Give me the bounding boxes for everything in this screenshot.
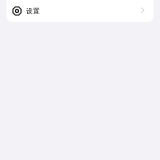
staticText: 设置 [26,7,40,15]
button[interactable]: 设置 [6,0,153,36]
